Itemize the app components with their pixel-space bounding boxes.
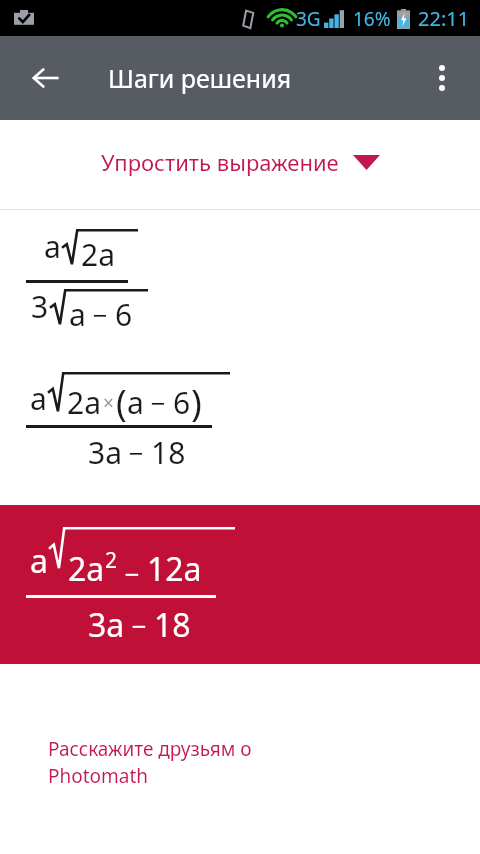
staticText: 3a xyxy=(88,432,122,473)
staticText: 2a xyxy=(81,234,115,275)
button[interactable]: a xyxy=(0,358,480,505)
staticText: 18 xyxy=(151,432,186,473)
staticText: 6 xyxy=(173,382,191,423)
staticText: 18 xyxy=(154,603,191,647)
staticText: 3 xyxy=(31,286,49,327)
staticText: a xyxy=(44,226,61,267)
staticText: − xyxy=(86,297,115,332)
staticText: − xyxy=(125,608,154,643)
staticText: ) xyxy=(191,378,202,427)
button[interactable]: Расскажите друзьям о Photomath xyxy=(0,736,480,789)
staticText: 2 xyxy=(105,546,118,575)
staticText: 16% xyxy=(353,6,391,32)
staticText: Расскажите друзьям о Photomath xyxy=(48,736,252,789)
staticText: 12a xyxy=(147,547,202,591)
staticText: − xyxy=(118,556,147,591)
button[interactable]: a xyxy=(0,210,480,358)
staticText: Шаги решения xyxy=(108,61,292,95)
staticText: Упростить выражение xyxy=(101,147,339,177)
staticText: 3G xyxy=(296,6,321,32)
staticText: a xyxy=(127,382,144,423)
staticText: − xyxy=(144,385,173,420)
button[interactable]: a xyxy=(0,505,480,664)
staticText: 2a xyxy=(67,382,101,423)
button[interactable]: More options xyxy=(414,50,470,106)
staticText: 6 xyxy=(115,294,133,335)
staticText: 2a xyxy=(68,547,105,591)
staticText: a xyxy=(69,294,86,335)
staticText: a xyxy=(30,378,47,419)
staticText: a xyxy=(30,539,48,583)
button[interactable]: Упростить выражение xyxy=(93,141,388,183)
staticText: ( xyxy=(116,378,127,427)
staticText: − xyxy=(122,435,151,470)
button[interactable]: Back xyxy=(18,50,74,106)
staticText: 22:11 xyxy=(418,5,470,32)
staticText: × xyxy=(103,390,114,416)
staticText: 3a xyxy=(88,603,125,647)
